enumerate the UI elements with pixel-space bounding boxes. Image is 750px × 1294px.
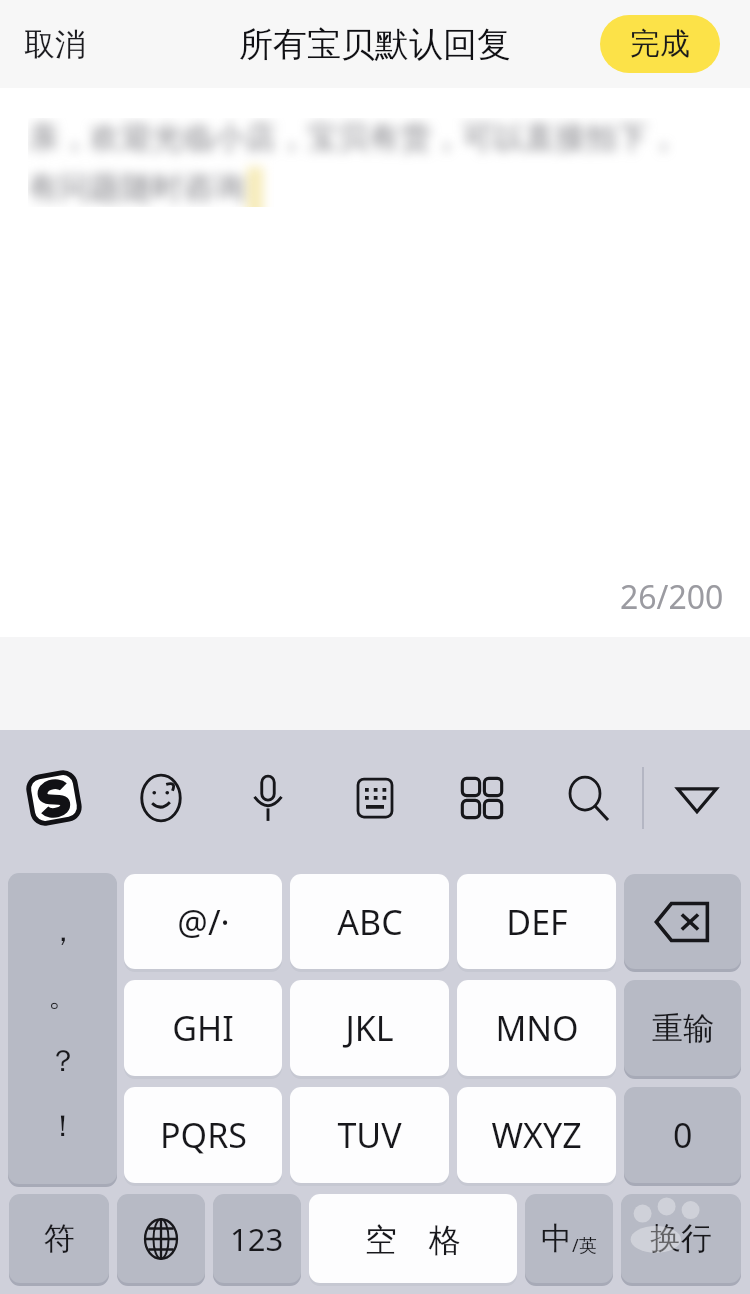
staticText: 空 格 bbox=[365, 1217, 461, 1261]
button[interactable]: Keyboard layout bbox=[321, 730, 428, 866]
button[interactable]: WXYZ bbox=[457, 1087, 616, 1183]
button[interactable] bbox=[117, 1194, 205, 1283]
staticText: JKL bbox=[345, 1005, 394, 1051]
button[interactable]: Search bbox=[535, 730, 642, 866]
staticText: ABC bbox=[337, 899, 403, 945]
staticText: 0 bbox=[673, 1112, 693, 1158]
staticText: 重输 bbox=[652, 1009, 714, 1048]
staticText: 有问题随时咨询 bbox=[28, 168, 245, 207]
staticText: 符 bbox=[44, 1219, 75, 1258]
staticText: /英 bbox=[572, 1233, 597, 1258]
button[interactable]: PQRS bbox=[124, 1087, 282, 1183]
button[interactable]: 完成 bbox=[600, 15, 720, 73]
button[interactable]: 中 bbox=[525, 1194, 613, 1283]
button[interactable]: GHI bbox=[124, 980, 282, 1076]
button[interactable] bbox=[624, 874, 741, 969]
staticText: ！ bbox=[48, 1107, 78, 1145]
staticText: WXYZ bbox=[491, 1112, 582, 1158]
other: Punctuation bbox=[8, 873, 117, 1187]
button[interactable]: JKL bbox=[290, 980, 449, 1076]
button[interactable]: Hide keyboard bbox=[644, 730, 750, 866]
staticText: TUV bbox=[337, 1112, 402, 1158]
button[interactable]: DEF bbox=[457, 874, 616, 969]
other: Switch language bbox=[117, 1194, 205, 1286]
staticText: GHI bbox=[172, 1005, 234, 1051]
button[interactable]: ABC bbox=[290, 874, 449, 969]
button[interactable]: Emoji bbox=[108, 730, 214, 866]
button[interactable]: ， bbox=[8, 873, 117, 1184]
staticText: 所有宝贝默认回复 bbox=[239, 23, 511, 66]
staticText: 完成 bbox=[630, 25, 690, 63]
staticText: 换行 bbox=[650, 1219, 712, 1258]
button[interactable]: 重输 bbox=[624, 980, 741, 1076]
staticText: 123 bbox=[230, 1218, 284, 1260]
button[interactable]: Voice input bbox=[214, 730, 321, 866]
button[interactable]: 123 bbox=[213, 1194, 301, 1283]
button[interactable]: 换行 bbox=[621, 1194, 741, 1283]
staticText: PQRS bbox=[160, 1112, 247, 1158]
staticText: DEF bbox=[506, 899, 568, 945]
staticText: ， bbox=[48, 912, 78, 950]
button[interactable]: MNO bbox=[457, 980, 616, 1076]
staticText: 亲，欢迎光临小店，宝贝有货，可以直接拍下， bbox=[28, 118, 679, 157]
staticText: 26/200 bbox=[620, 575, 724, 619]
button[interactable]: 空 格 bbox=[309, 1194, 517, 1283]
button[interactable]: Sogou input method bbox=[0, 730, 108, 866]
staticText: 取消 bbox=[24, 25, 86, 64]
staticText: 中 bbox=[541, 1219, 572, 1258]
button[interactable]: @/· bbox=[124, 874, 282, 969]
button[interactable]: 0 bbox=[624, 1087, 741, 1183]
staticText: ？ bbox=[48, 1042, 78, 1080]
button[interactable]: TUV bbox=[290, 1087, 449, 1183]
staticText: 。 bbox=[48, 977, 78, 1015]
other: Backspace bbox=[624, 874, 741, 972]
staticText: MNO bbox=[495, 1005, 579, 1051]
button[interactable]: More tools bbox=[428, 730, 535, 866]
button[interactable]: 取消 bbox=[12, 15, 98, 74]
staticText: @/· bbox=[177, 899, 230, 945]
button[interactable]: 符 bbox=[9, 1194, 109, 1283]
